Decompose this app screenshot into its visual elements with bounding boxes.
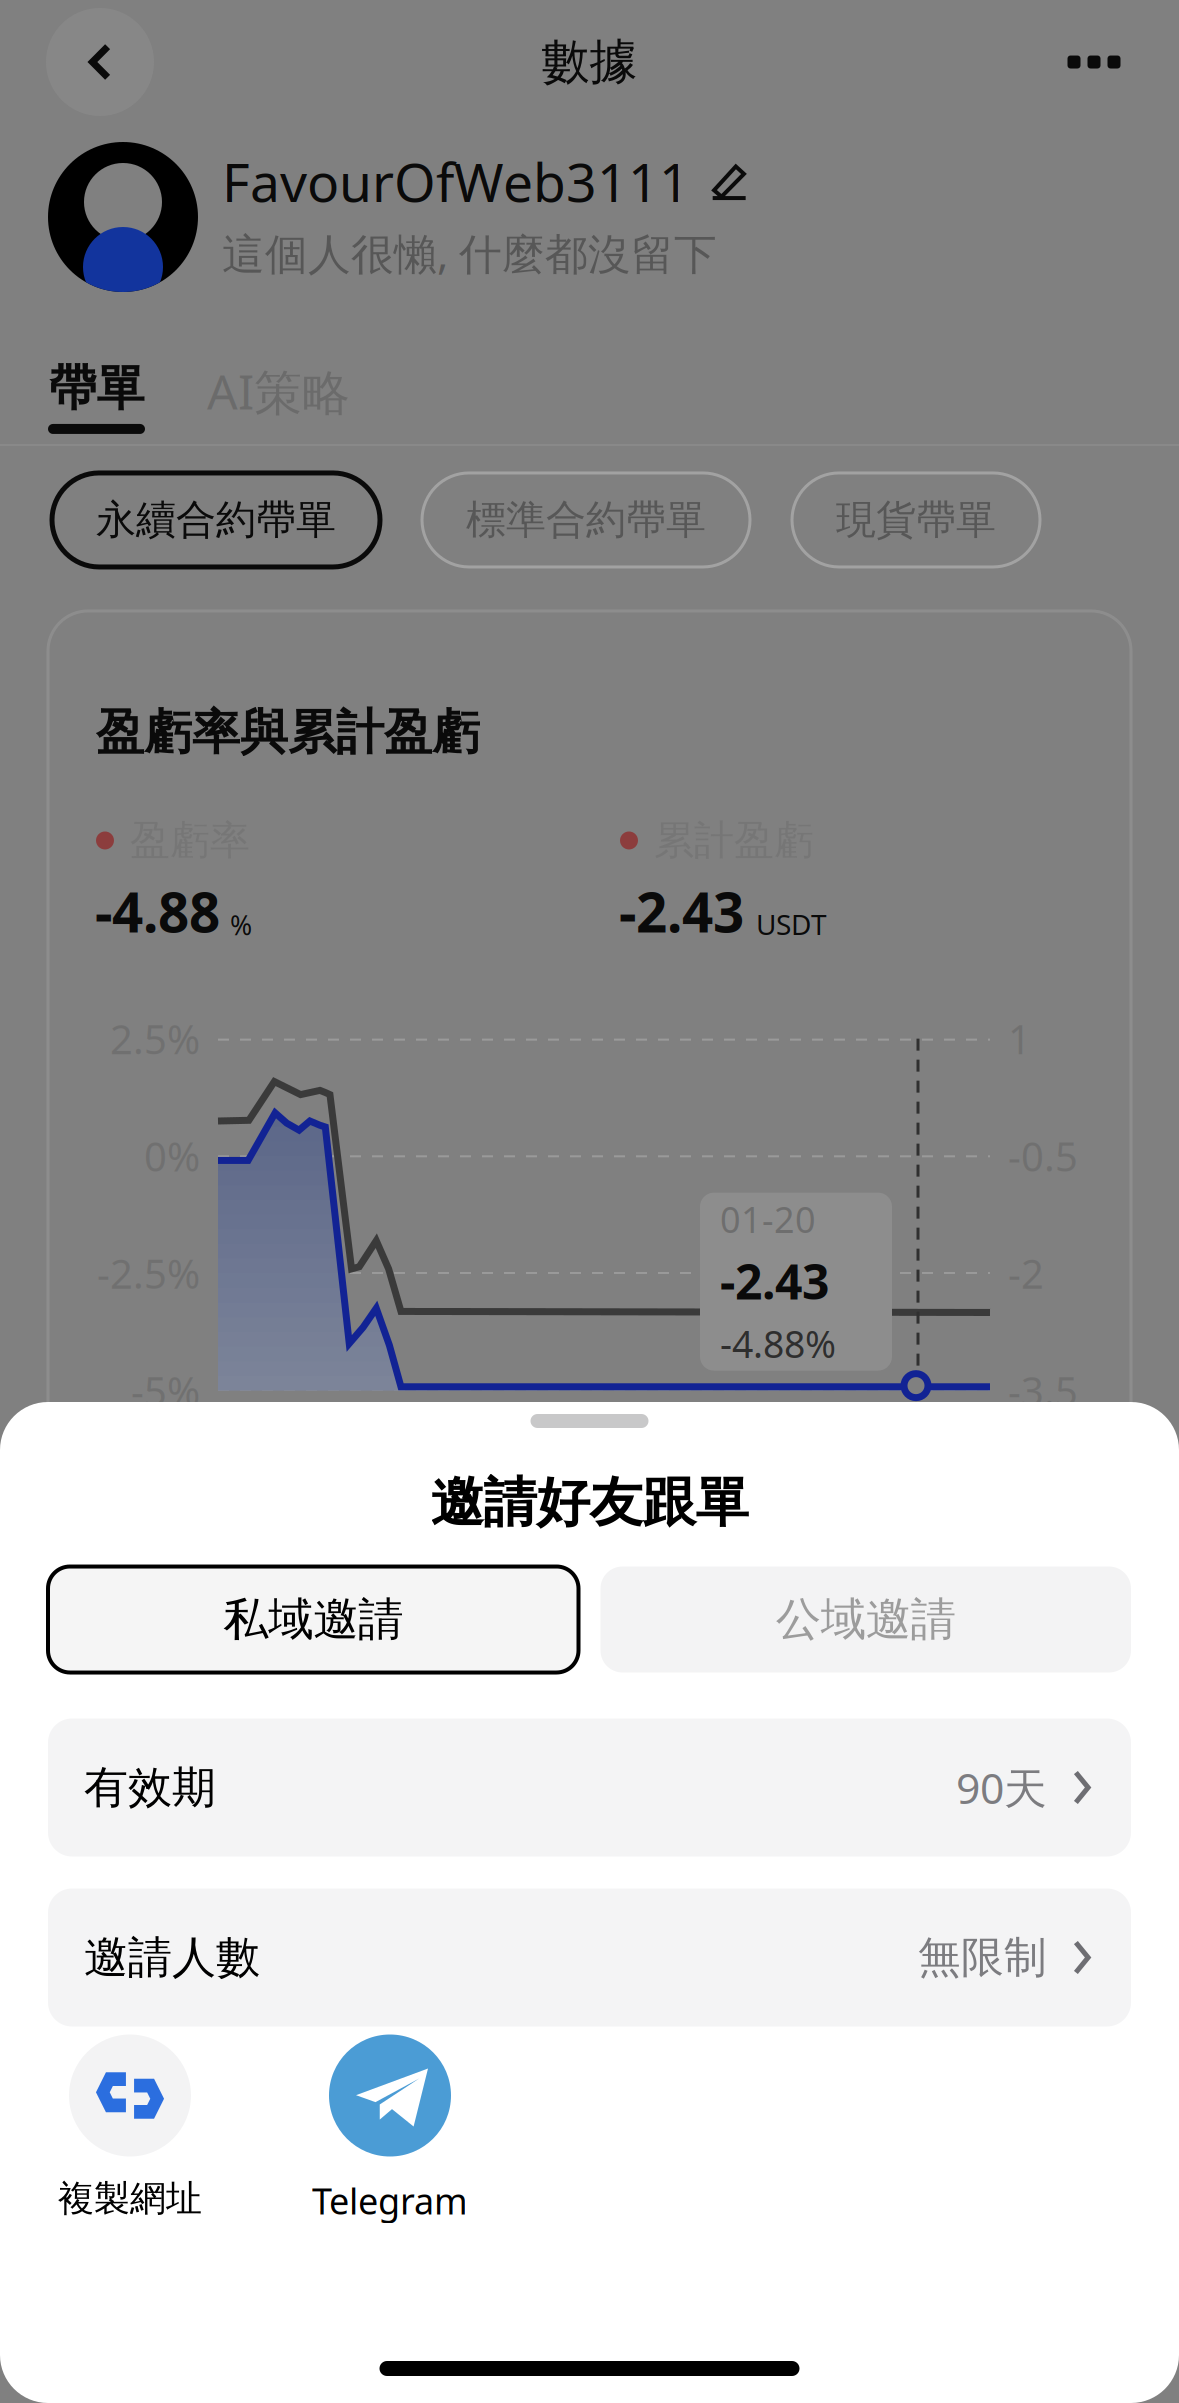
- button[interactable]: 帶單: [48, 359, 145, 434]
- button[interactable]: 公域邀請: [600, 1566, 1131, 1672]
- staticText: 這個人很懶, 什麼都沒留下: [222, 225, 717, 281]
- staticText: -5%: [131, 1364, 200, 1417]
- staticText: 2.5%: [110, 1012, 200, 1065]
- staticText: 帶單: [48, 359, 144, 418]
- button[interactable]: AI策略: [145, 359, 350, 423]
- staticText: FavourOfWeb3111: [222, 146, 690, 217]
- button[interactable]: 私域邀請: [48, 1566, 578, 1672]
- staticText: 0%: [144, 1129, 200, 1182]
- staticText: 邀請人數: [84, 1930, 260, 1984]
- button[interactable]: Back: [45, 7, 155, 117]
- button[interactable]: 標準合約帶單: [422, 473, 750, 567]
- button[interactable]: Telegram: [260, 2034, 520, 2224]
- button[interactable]: 永續合約帶單: [52, 473, 380, 567]
- button[interactable]: 現貨帶單: [792, 473, 1040, 567]
- staticText: 1: [1008, 1012, 1031, 1065]
- staticText: Telegram: [312, 2176, 468, 2224]
- staticText: 無限制: [918, 1931, 1047, 1984]
- staticText: 私域邀請: [223, 1592, 403, 1647]
- button[interactable]: More options: [1039, 7, 1149, 117]
- staticText: 90天: [956, 1759, 1047, 1816]
- staticText: 複製網址: [58, 2176, 202, 2221]
- button[interactable]: 複製網址: [0, 2034, 260, 2221]
- staticText: 現貨帶單: [836, 495, 996, 544]
- staticText: AI策略: [207, 359, 350, 423]
- staticText: 公域邀請: [776, 1592, 956, 1647]
- staticText: 累計盈虧: [654, 816, 814, 865]
- staticText: -4.88%: [720, 1319, 836, 1368]
- staticText: -3.5: [1008, 1364, 1078, 1417]
- staticText: 數據: [541, 32, 637, 91]
- staticText: 邀請好友跟單: [430, 1470, 748, 1535]
- staticText: 有效期: [84, 1760, 216, 1814]
- staticText: -2: [1008, 1247, 1044, 1300]
- staticText: USDT: [756, 905, 827, 943]
- staticText: 01-20: [720, 1195, 816, 1243]
- staticText: 標準合約帶單: [466, 495, 706, 544]
- staticText: %: [230, 907, 252, 943]
- staticText: 永續合約帶單: [96, 495, 336, 544]
- staticText: -2.43: [720, 1249, 829, 1313]
- staticText: 盈虧率與累計盈虧: [96, 703, 480, 762]
- button[interactable]: 有效期: [48, 1718, 1131, 1856]
- staticText: -2.43: [619, 875, 744, 948]
- button[interactable]: 邀請人數: [48, 1888, 1131, 2026]
- staticText: -2.5%: [97, 1247, 200, 1300]
- staticText: 盈虧率: [130, 816, 250, 865]
- staticText: -4.88: [95, 875, 220, 948]
- staticText: -0.5: [1008, 1129, 1078, 1182]
